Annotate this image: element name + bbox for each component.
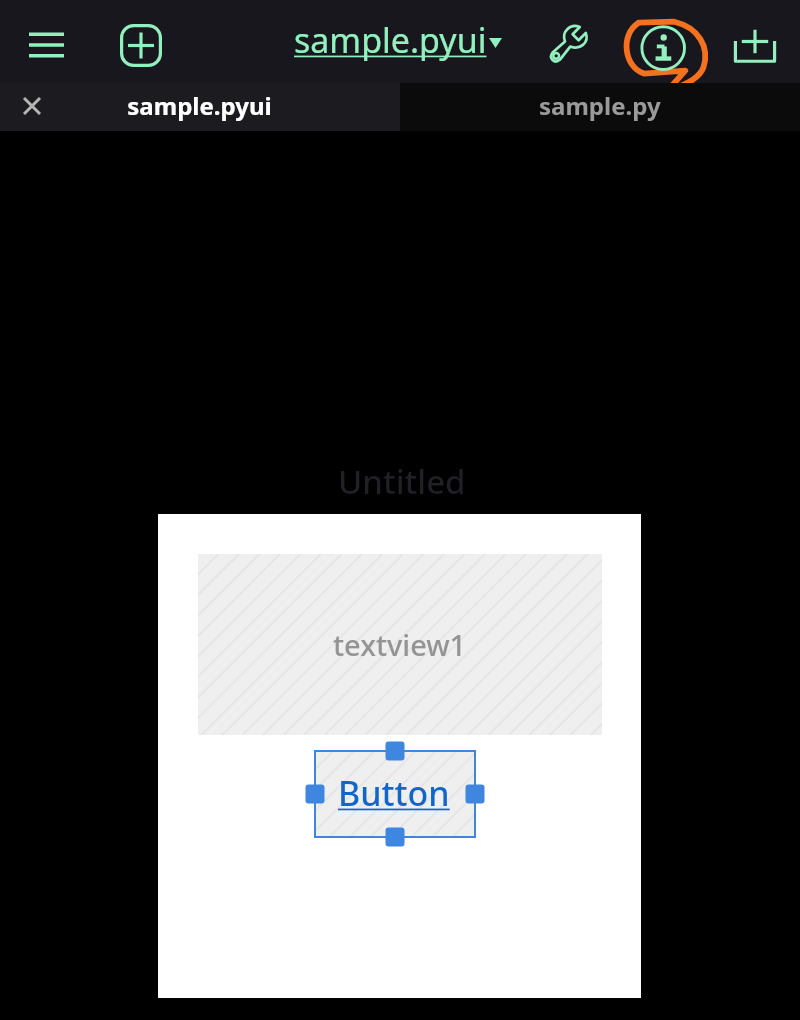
- button[interactable]: Close tab: [0, 83, 400, 131]
- button[interactable]: Close tab: [0, 83, 61, 131]
- staticText: sample.pyui: [61, 89, 338, 122]
- button[interactable]: sample.py: [400, 83, 800, 131]
- staticText: sample.py: [539, 89, 661, 122]
- staticText: Untitled: [338, 459, 466, 504]
- staticText: textview1: [333, 625, 467, 664]
- button[interactable]: Add item: [722, 12, 788, 76]
- button[interactable]: Info: [620, 3, 716, 86]
- button[interactable]: Menu: [14, 20, 79, 70]
- button[interactable]: Tools: [537, 12, 603, 76]
- staticText: sample.pyui: [294, 17, 505, 63]
- button[interactable]: sample.pyui: [288, 11, 514, 69]
- staticText: Button: [338, 770, 450, 816]
- button[interactable]: Button: [314, 750, 474, 836]
- button[interactable]: New file: [107, 15, 174, 75]
